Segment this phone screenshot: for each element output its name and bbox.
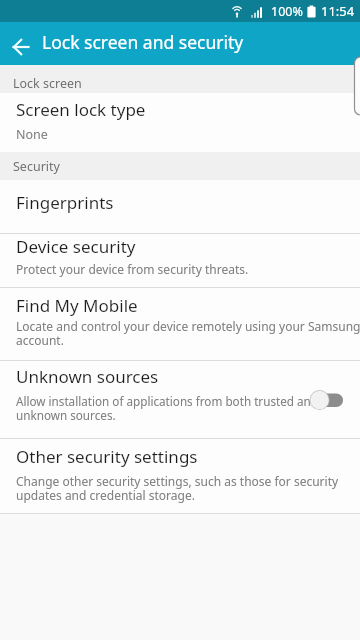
staticText: Lock screen and security: [42, 30, 244, 54]
staticText: Change other security settings, such as …: [16, 473, 339, 504]
staticText: Screen lock type: [16, 98, 146, 121]
button[interactable]: [0, 22, 42, 65]
staticText: Device security: [16, 235, 136, 258]
staticText: None: [16, 126, 48, 143]
staticText: Lock screen: [13, 75, 82, 92]
button[interactable]: Device security: [0, 234, 360, 287]
button[interactable]: Find My Mobile: [0, 288, 360, 360]
staticText: 100%: [271, 3, 303, 20]
button[interactable]: [309, 389, 343, 411]
button[interactable]: Other security settings: [0, 439, 360, 513]
button[interactable]: Unknown sources: [0, 361, 360, 438]
staticText: Find My Mobile: [16, 294, 138, 317]
button[interactable]: Fingerprints: [0, 180, 360, 233]
button[interactable]: Screen lock type: [0, 93, 360, 152]
staticText: Locate and control your device remotely …: [16, 318, 360, 349]
staticText: Unknown sources: [16, 365, 159, 388]
staticText: 11:54: [321, 2, 355, 20]
staticText: Other security settings: [16, 445, 198, 468]
staticText: Protect your device from security threat…: [16, 261, 249, 277]
staticText: Security: [13, 158, 60, 175]
staticText: Fingerprints: [16, 191, 114, 214]
staticText: Allow installation of applications from …: [16, 393, 319, 423]
